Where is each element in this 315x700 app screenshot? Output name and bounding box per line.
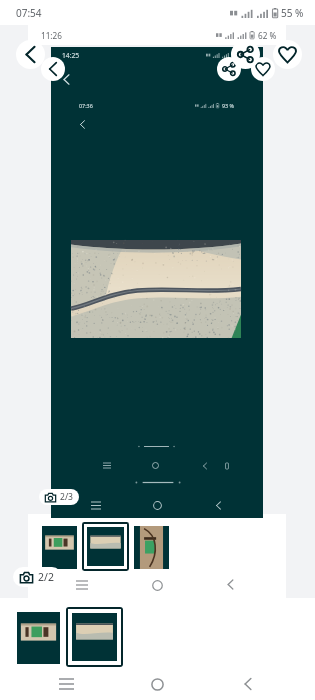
button[interactable]: Recents: [59, 679, 74, 689]
staticText: 55 %: [281, 6, 304, 20]
button[interactable]: Rotate screen: [224, 463, 230, 469]
button[interactable]: Back: [41, 57, 65, 81]
button[interactable]: 2/3: [39, 489, 79, 505]
button[interactable]: Back: [225, 579, 236, 590]
button[interactable]: Back: [201, 462, 209, 470]
button[interactable]: Back: [77, 119, 88, 130]
button[interactable]: Favourite: [251, 57, 275, 81]
staticText: 62 %: [258, 30, 277, 41]
button[interactable]: [87, 527, 124, 566]
button[interactable]: Recents: [91, 502, 101, 509]
button[interactable]: Share: [217, 57, 241, 81]
button[interactable]: [72, 613, 117, 661]
staticText: 2/3: [60, 491, 74, 503]
button[interactable]: Home: [153, 501, 162, 510]
staticText: 07:36: [79, 102, 93, 109]
button[interactable]: [17, 612, 60, 664]
button[interactable]: 2/2: [13, 567, 62, 587]
staticText: 07:54: [16, 6, 42, 20]
button[interactable]: Home: [152, 462, 159, 469]
button[interactable]: Recents: [103, 463, 111, 468]
button[interactable]: [42, 526, 77, 569]
button[interactable]: Recents: [76, 581, 88, 589]
button[interactable]: Favourite: [273, 40, 302, 69]
button[interactable]: [134, 526, 169, 569]
button[interactable]: Back: [241, 677, 255, 691]
button[interactable]: Back: [214, 501, 223, 510]
staticText: 93 %: [222, 102, 235, 109]
button[interactable]: Home: [151, 678, 164, 691]
staticText: 2/2: [38, 570, 54, 584]
button[interactable]: Back: [60, 73, 73, 86]
button[interactable]: Home: [152, 580, 163, 591]
button[interactable]: Back: [16, 40, 45, 69]
staticText: 11:26: [41, 30, 62, 41]
button[interactable]: Share: [231, 40, 260, 69]
staticText: 14:25: [62, 51, 80, 60]
